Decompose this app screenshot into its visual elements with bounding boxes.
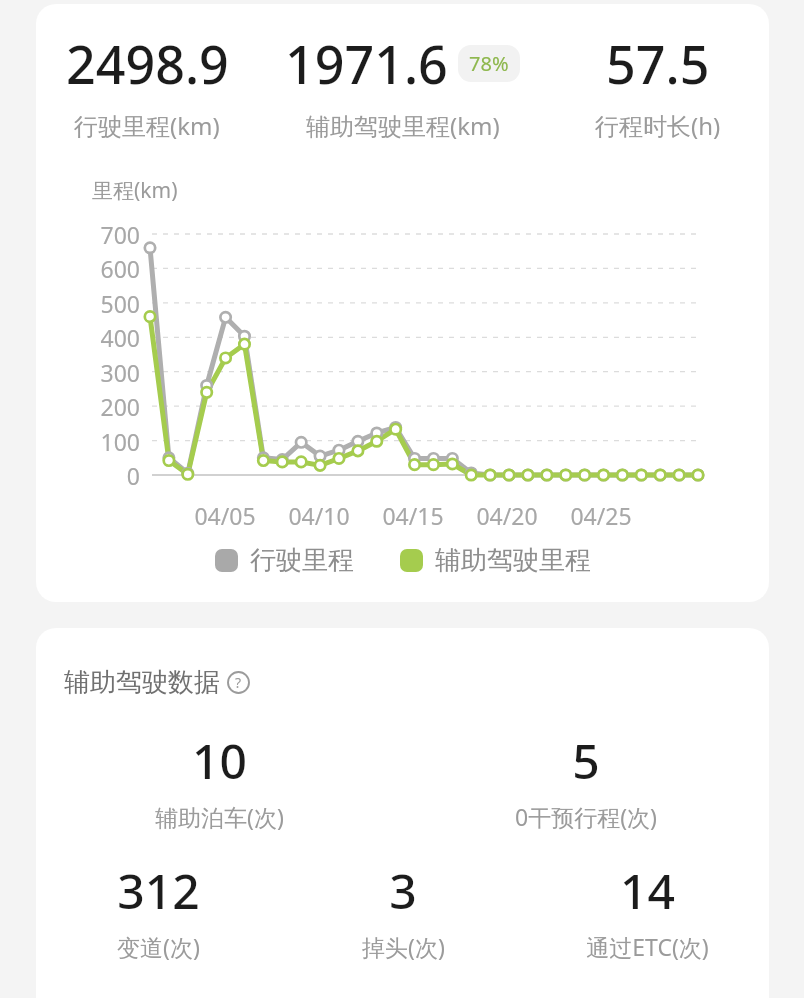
button[interactable]: 5 xyxy=(402,728,769,832)
staticText: 700 xyxy=(100,219,140,250)
staticText: 3 xyxy=(389,858,417,923)
staticText: 300 xyxy=(100,357,140,388)
button[interactable]: 312 xyxy=(36,858,281,962)
button[interactable]: 1971.6 xyxy=(258,28,547,142)
staticText: 1971.6 xyxy=(285,28,448,99)
button[interactable]: 14 xyxy=(525,858,769,962)
staticText: 57.5 xyxy=(606,28,710,99)
staticText: 2498.9 xyxy=(66,28,229,99)
staticText: 14 xyxy=(620,858,675,923)
staticText: 辅助泊车(次) xyxy=(155,801,284,832)
staticText: 200 xyxy=(100,391,140,422)
staticText: 04/25 xyxy=(570,500,632,531)
staticText: 掉头(次) xyxy=(362,931,445,962)
button[interactable]: 辅助驾驶里程 xyxy=(400,544,591,577)
staticText: 0 xyxy=(126,460,140,491)
other: 帮助说明 xyxy=(227,671,250,694)
staticText: 变道(次) xyxy=(117,931,200,962)
staticText: 10 xyxy=(192,728,247,793)
staticText: 辅助驾驶里程 xyxy=(435,544,591,577)
staticText: 0干预行程(次) xyxy=(515,801,657,832)
button[interactable]: 辅助驾驶数据 xyxy=(64,666,250,699)
staticText: 里程(km) xyxy=(92,176,178,205)
staticText: 行驶里程(km) xyxy=(74,109,220,142)
staticText: 04/15 xyxy=(382,500,444,531)
staticText: 400 xyxy=(100,322,140,353)
staticText: 100 xyxy=(100,426,140,457)
staticText: 辅助驾驶数据 xyxy=(64,666,220,699)
staticText: 辅助驾驶里程(km) xyxy=(306,109,500,142)
button[interactable]: 10 xyxy=(36,728,402,832)
staticText: 通过ETC(次) xyxy=(586,931,709,962)
staticText: 行驶里程 xyxy=(250,544,354,577)
staticText: 行程时长(h) xyxy=(595,109,721,142)
staticText: 04/10 xyxy=(288,500,350,531)
staticText: ? xyxy=(235,673,242,692)
button[interactable]: 3 xyxy=(281,858,525,962)
staticText: 5 xyxy=(572,728,600,793)
staticText: 500 xyxy=(100,288,140,319)
staticText: 04/20 xyxy=(476,500,538,531)
button[interactable]: 行驶里程 xyxy=(215,544,354,577)
staticText: 78% xyxy=(469,50,509,77)
staticText: 04/05 xyxy=(194,500,256,531)
staticText: 312 xyxy=(117,858,200,923)
button[interactable]: 57.5 xyxy=(547,28,769,142)
button[interactable]: 2498.9 xyxy=(36,28,258,142)
staticText: 600 xyxy=(100,253,140,284)
